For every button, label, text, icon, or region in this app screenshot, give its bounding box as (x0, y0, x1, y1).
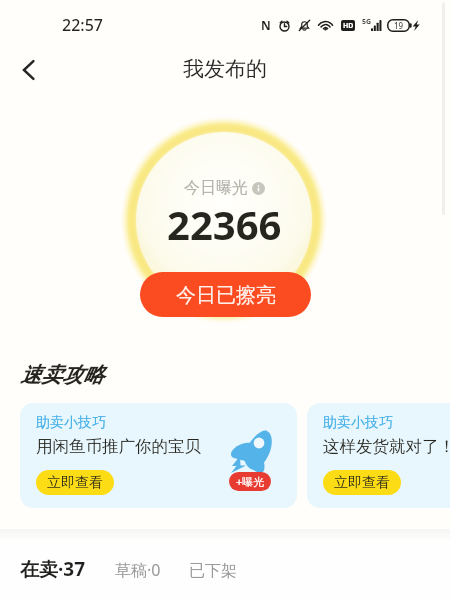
button[interactable]: 立即查看 (36, 470, 114, 495)
staticText: 22366 (167, 197, 282, 251)
staticText: 已下架 (189, 561, 237, 581)
button[interactable]: 助卖小技巧 (20, 403, 297, 508)
staticText: 在卖·37 (20, 556, 86, 582)
staticText: 19 (394, 20, 404, 31)
staticText: HD (343, 21, 354, 31)
staticText: 今日已擦亮 (176, 283, 276, 308)
staticText: 速卖攻略 (20, 362, 104, 388)
button[interactable]: 草稿·0 (115, 559, 161, 581)
staticText: 立即查看 (47, 474, 103, 492)
button[interactable]: 今日已擦亮 (140, 272, 311, 317)
staticText: +曝光 (236, 474, 265, 489)
staticText: 助卖小技巧 (36, 414, 106, 432)
button[interactable]: 立即查看 (323, 470, 401, 495)
button[interactable]: 已下架 (189, 561, 237, 581)
staticText: 5G (362, 17, 372, 27)
staticText: 草稿·0 (115, 559, 161, 581)
button[interactable]: Back (10, 51, 48, 89)
staticText: 这样发货就对了！ (323, 436, 450, 457)
button[interactable]: Info (252, 182, 265, 195)
staticText: 用闲鱼币推广你的宝贝 (36, 436, 201, 457)
staticText: 立即查看 (334, 474, 390, 492)
staticText: 我发布的 (183, 56, 267, 82)
button[interactable]: 助卖小技巧 (307, 403, 450, 508)
staticText: 22:57 (62, 14, 103, 36)
staticText: N (261, 17, 271, 33)
button[interactable]: 在卖·37 (20, 556, 86, 582)
staticText: 今日曝光 (184, 178, 248, 198)
staticText: 助卖小技巧 (323, 414, 393, 432)
